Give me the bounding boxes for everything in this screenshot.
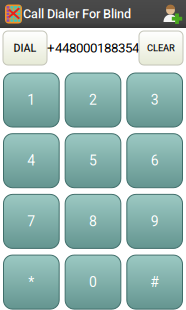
staticText: # <box>150 274 159 290</box>
staticText: CLEAR <box>147 42 175 53</box>
button[interactable]: Add contact <box>162 3 186 24</box>
staticText: 4 <box>27 152 35 169</box>
staticText: Call Dialer For Blind <box>23 7 131 21</box>
button[interactable]: 6 <box>127 134 182 188</box>
button[interactable]: 9 <box>127 194 182 248</box>
button[interactable]: 8 <box>65 194 121 248</box>
button[interactable]: 2 <box>65 73 121 127</box>
staticText: 7 <box>27 213 35 230</box>
staticText: 3 <box>151 92 159 108</box>
button[interactable]: 3 <box>127 73 182 127</box>
staticText: 1 <box>27 92 35 108</box>
button[interactable]: # <box>127 255 182 309</box>
button[interactable]: 5 <box>65 134 121 188</box>
button[interactable]: 0 <box>65 255 121 309</box>
button[interactable]: 4 <box>3 134 59 188</box>
staticText: 5 <box>89 152 97 169</box>
staticText: * <box>28 274 34 290</box>
staticText: 2 <box>89 92 97 108</box>
button[interactable]: 1 <box>3 73 59 127</box>
button[interactable]: DIAL <box>3 31 47 65</box>
staticText: 6 <box>151 152 159 169</box>
staticText: 0 <box>89 274 97 290</box>
staticText: 9 <box>151 213 159 230</box>
button[interactable]: * <box>3 255 59 309</box>
staticText: +448000188354 <box>47 40 139 56</box>
button[interactable]: CLEAR <box>139 31 183 65</box>
staticText: 8 <box>89 213 97 230</box>
button[interactable]: 7 <box>3 194 59 248</box>
staticText: DIAL <box>13 42 36 54</box>
